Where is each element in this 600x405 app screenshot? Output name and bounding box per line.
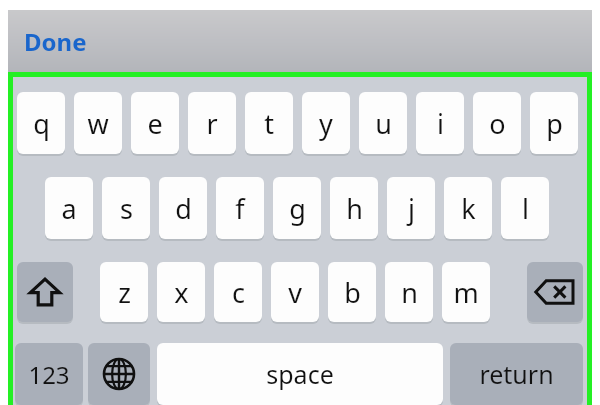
- button[interactable]: d: [159, 177, 207, 239]
- button[interactable]: k: [444, 177, 492, 239]
- staticText: y: [319, 105, 333, 142]
- button[interactable]: Backspace: [527, 262, 583, 322]
- button[interactable]: t: [245, 92, 293, 154]
- button[interactable]: Done: [24, 22, 120, 60]
- staticText: o: [489, 105, 506, 142]
- staticText: x: [174, 274, 189, 311]
- staticText: m: [453, 274, 479, 311]
- button[interactable]: Shift: [17, 262, 73, 322]
- button[interactable]: m: [442, 262, 490, 322]
- button[interactable]: r: [188, 92, 236, 154]
- staticText: r: [206, 105, 218, 142]
- button[interactable]: j: [387, 177, 435, 239]
- staticText: p: [546, 105, 563, 142]
- staticText: e: [147, 105, 163, 142]
- button[interactable]: 123: [15, 343, 83, 405]
- button[interactable]: f: [216, 177, 264, 239]
- button[interactable]: y: [302, 92, 350, 154]
- staticText: j: [408, 190, 415, 227]
- button[interactable]: e: [131, 92, 179, 154]
- staticText: a: [61, 190, 77, 227]
- button[interactable]: z: [100, 262, 148, 322]
- staticText: return: [479, 357, 554, 391]
- staticText: t: [264, 105, 274, 142]
- staticText: q: [33, 105, 50, 142]
- button[interactable]: space: [157, 343, 443, 405]
- staticText: space: [266, 357, 334, 391]
- button[interactable]: w: [74, 92, 122, 154]
- staticText: v: [288, 274, 302, 311]
- button[interactable]: q: [17, 92, 65, 154]
- staticText: d: [175, 190, 192, 227]
- button[interactable]: n: [385, 262, 433, 322]
- staticText: 123: [28, 358, 70, 391]
- button[interactable]: return: [450, 343, 583, 405]
- button[interactable]: g: [273, 177, 321, 239]
- staticText: c: [232, 274, 245, 311]
- button[interactable]: u: [359, 92, 407, 154]
- button[interactable]: b: [328, 262, 376, 322]
- button[interactable]: c: [214, 262, 262, 322]
- staticText: h: [346, 190, 363, 227]
- staticText: k: [461, 190, 476, 227]
- staticText: g: [289, 190, 306, 227]
- button[interactable]: i: [416, 92, 464, 154]
- staticText: s: [120, 190, 133, 227]
- button[interactable]: h: [330, 177, 378, 239]
- button[interactable]: x: [157, 262, 205, 322]
- button[interactable]: o: [473, 92, 521, 154]
- button[interactable]: p: [530, 92, 578, 154]
- staticText: l: [522, 190, 529, 227]
- button[interactable]: a: [45, 177, 93, 239]
- staticText: i: [437, 105, 444, 142]
- button[interactable]: v: [271, 262, 319, 322]
- staticText: f: [235, 190, 245, 227]
- button[interactable]: s: [102, 177, 150, 239]
- staticText: u: [375, 105, 392, 142]
- staticText: z: [118, 274, 131, 311]
- staticText: w: [87, 105, 109, 142]
- staticText: n: [401, 274, 418, 311]
- staticText: b: [344, 274, 361, 311]
- button[interactable]: Switch keyboard: [88, 343, 150, 405]
- staticText: Done: [24, 25, 87, 58]
- button[interactable]: l: [501, 177, 549, 239]
